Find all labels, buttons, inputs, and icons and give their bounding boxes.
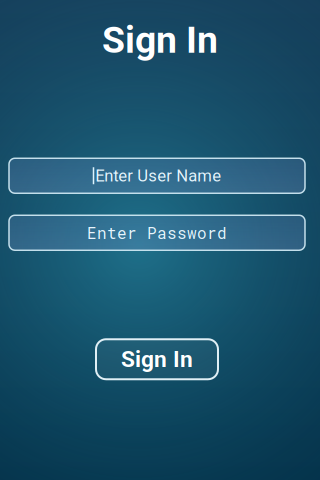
button[interactable]: Sign In bbox=[96, 339, 218, 379]
staticText: Enter Password bbox=[87, 222, 227, 243]
button[interactable]: Enter Password bbox=[9, 215, 305, 250]
staticText: Sign In bbox=[102, 18, 218, 62]
staticText: Enter User Name bbox=[95, 166, 221, 185]
button[interactable]: Enter User Name bbox=[9, 158, 305, 193]
staticText: Sign In bbox=[121, 346, 193, 373]
